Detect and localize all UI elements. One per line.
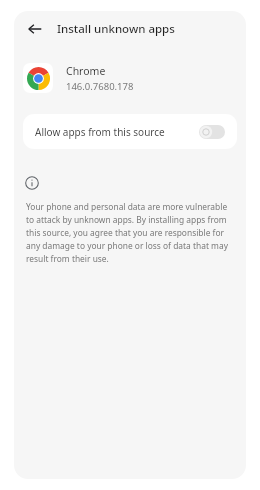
staticText: Install unknown apps xyxy=(57,21,175,37)
button[interactable]: Allow apps from this source xyxy=(23,114,237,149)
button[interactable]: Allow apps from this source toggle xyxy=(199,125,225,139)
staticText: Your phone and personal data are more vu… xyxy=(26,201,235,265)
staticText: Allow apps from this source xyxy=(35,125,199,139)
staticText: Chrome xyxy=(66,64,106,78)
staticText: 146.0.7680.178 xyxy=(66,80,134,93)
button[interactable]: Chrome xyxy=(14,58,246,98)
button[interactable]: Back xyxy=(23,17,47,41)
